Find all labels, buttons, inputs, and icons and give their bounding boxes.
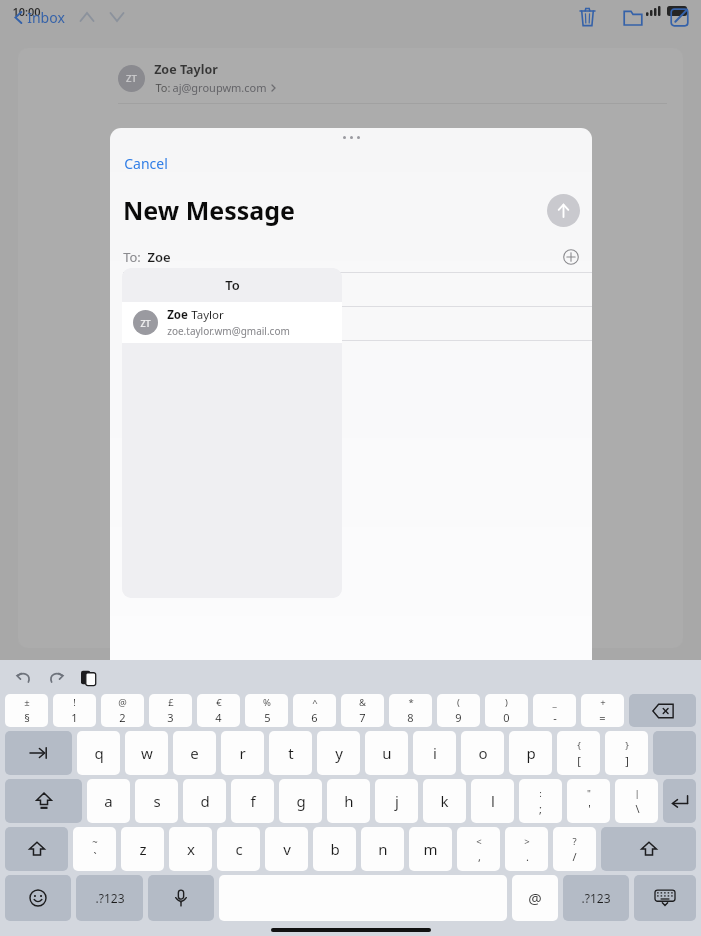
button[interactable]: Add contact [563, 249, 579, 265]
button[interactable]: ) [485, 694, 528, 727]
button[interactable]: * [389, 694, 432, 727]
staticText: @ [118, 696, 127, 709]
button[interactable]: w [125, 731, 168, 775]
button[interactable]: Return [663, 779, 696, 823]
button[interactable]: & [341, 694, 384, 727]
button[interactable]: Undo [14, 668, 32, 686]
staticText: p [526, 743, 536, 763]
button[interactable]: < [457, 827, 500, 871]
button[interactable]: o [461, 731, 504, 775]
staticText: + [600, 696, 606, 709]
button[interactable] [110, 273, 592, 306]
button[interactable]: j [375, 779, 418, 823]
staticText: aj@groupwm.com [172, 80, 267, 95]
staticText: 1 [71, 710, 78, 725]
button[interactable]: h [327, 779, 370, 823]
button[interactable]: z [121, 827, 164, 871]
staticText: zoe.taylor.wm@gmail.com [167, 324, 290, 338]
staticText: b [330, 839, 340, 859]
button[interactable]: Emoji [5, 875, 71, 921]
button[interactable]: ( [437, 694, 480, 727]
button[interactable]: Next message [109, 8, 125, 26]
staticText: ` [93, 849, 97, 864]
button[interactable]: Backspace [629, 694, 696, 727]
button[interactable]: e [173, 731, 216, 775]
button[interactable]: Shift [5, 827, 68, 871]
staticText: Zoe [147, 248, 171, 266]
button[interactable]: s [135, 779, 178, 823]
staticText: q [94, 743, 104, 763]
button[interactable]: Tab [5, 731, 72, 775]
staticText: * [408, 696, 414, 709]
button[interactable]: { [557, 731, 600, 775]
button[interactable]: c [217, 827, 260, 871]
button[interactable]: Paste [81, 669, 96, 686]
button[interactable]: r [221, 731, 264, 775]
staticText: Taylor [188, 307, 224, 323]
button[interactable]: € [197, 694, 240, 727]
button[interactable]: ± [5, 694, 48, 727]
button[interactable]: p [509, 731, 552, 775]
button[interactable]: i [413, 731, 456, 775]
button[interactable]: | [615, 779, 658, 823]
button[interactable]: f [231, 779, 274, 823]
button[interactable]: y [317, 731, 360, 775]
button[interactable]: q [77, 731, 120, 775]
staticText: | [634, 787, 640, 800]
button[interactable]: v [265, 827, 308, 871]
staticText: ; [539, 801, 542, 816]
button[interactable]: @ [101, 694, 144, 727]
button[interactable]: ! [53, 694, 96, 727]
staticText: 5 [264, 710, 271, 725]
button[interactable]: + [581, 694, 624, 727]
button[interactable]: _ [533, 694, 576, 727]
button[interactable]: Caps lock [5, 779, 82, 823]
button[interactable]: Previous message [79, 8, 95, 26]
button[interactable]: Send [547, 194, 580, 227]
button[interactable]: @ [512, 875, 558, 921]
button[interactable]: % [245, 694, 288, 727]
button[interactable]: u [365, 731, 408, 775]
button[interactable]: d [183, 779, 226, 823]
button[interactable]: m [409, 827, 452, 871]
button[interactable]: £ [149, 694, 192, 727]
button[interactable]: g [279, 779, 322, 823]
button[interactable]: t [269, 731, 312, 775]
button[interactable]: ^ [293, 694, 336, 727]
button[interactable]: To: [110, 241, 592, 272]
button[interactable]: Dictate [148, 875, 214, 921]
button[interactable]: l [471, 779, 514, 823]
button[interactable]: n [361, 827, 404, 871]
button[interactable]: ~ [73, 827, 116, 871]
staticText: Inbox [27, 8, 65, 27]
button[interactable]: Delete [579, 7, 596, 27]
staticText: " [587, 787, 591, 800]
button[interactable]: .?123 [563, 875, 629, 921]
button[interactable]: ? [553, 827, 596, 871]
button[interactable]: " [567, 779, 610, 823]
button[interactable]: Inbox [12, 4, 67, 31]
button[interactable]: k [423, 779, 466, 823]
staticText: ZT [140, 317, 151, 329]
button[interactable]: Return [653, 731, 696, 775]
button[interactable]: Redo [48, 668, 66, 686]
button[interactable]: a [87, 779, 130, 823]
button[interactable]: Move to folder [623, 9, 643, 26]
staticText: ) [505, 696, 508, 709]
button[interactable]: New message [670, 8, 689, 27]
button[interactable]: } [605, 731, 648, 775]
button[interactable]: > [505, 827, 548, 871]
button[interactable] [110, 307, 592, 340]
button[interactable]: x [169, 827, 212, 871]
button[interactable]: : [519, 779, 562, 823]
button[interactable]: .?123 [76, 875, 143, 921]
button[interactable]: b [313, 827, 356, 871]
staticText: Cancel [124, 154, 168, 173]
button[interactable]: Hide keyboard [634, 875, 696, 921]
button[interactable]: Shift [601, 827, 696, 871]
button[interactable]: ZT [122, 302, 342, 343]
button[interactable]: Cancel [121, 152, 171, 175]
staticText: a [104, 791, 113, 811]
staticText: 9 [455, 710, 462, 725]
